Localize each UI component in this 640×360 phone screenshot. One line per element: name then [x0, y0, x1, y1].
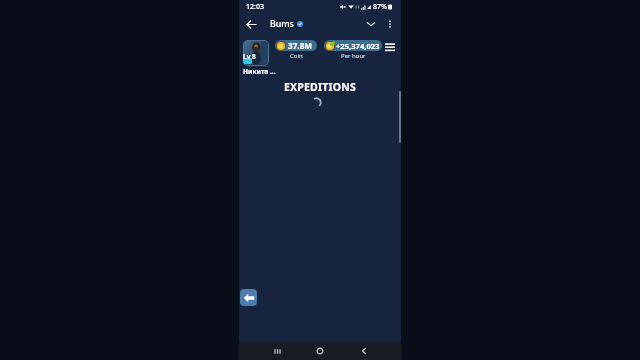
button[interactable]: Expand	[363, 16, 379, 32]
staticText: Coin	[290, 52, 303, 60]
button[interactable]: Recent apps	[267, 342, 287, 360]
staticText: +25,374,023	[336, 41, 380, 51]
staticText: 37.8M	[288, 40, 313, 51]
staticText: Per hour	[341, 52, 366, 60]
button[interactable]: Back	[354, 342, 374, 360]
staticText: Lv 8	[243, 52, 256, 61]
staticText: EXPEDITIONS	[239, 80, 401, 94]
button[interactable]: Back	[243, 16, 259, 32]
button[interactable]: Home	[310, 342, 330, 360]
staticText: 87%	[373, 2, 387, 12]
button[interactable]: Menu	[384, 41, 396, 53]
button[interactable]: More options	[382, 16, 398, 32]
button[interactable]: +25,374,023	[325, 40, 380, 51]
staticText: 12:03	[246, 2, 264, 12]
staticText: Bums	[270, 18, 294, 30]
button[interactable]: Profile	[243, 40, 269, 66]
button[interactable]: Go back	[240, 289, 257, 306]
button[interactable]: 37.8M	[276, 40, 315, 51]
staticText: Никита ...	[243, 67, 276, 76]
